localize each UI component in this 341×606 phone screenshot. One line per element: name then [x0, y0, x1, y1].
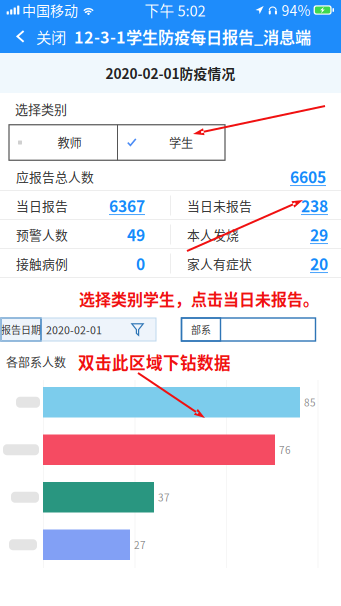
staticText: 27: [134, 537, 146, 552]
button[interactable]: 报告日期: [1, 318, 156, 341]
button[interactable]: 49: [127, 221, 145, 248]
staticText: 学生: [169, 134, 193, 151]
button[interactable]: 37: [0, 482, 341, 512]
staticText: 关闭: [36, 25, 66, 48]
staticText: 6367: [109, 194, 145, 217]
staticText: 选择类别学生，点击当日未报告。: [79, 287, 319, 310]
staticText: 20: [310, 252, 328, 275]
staticText: 94%: [282, 0, 311, 20]
staticText: 当日未报告: [187, 196, 252, 215]
staticText: 49: [127, 223, 145, 246]
staticText: 报告日期: [1, 322, 41, 337]
button[interactable]: 部系: [181, 318, 315, 341]
button[interactable]: 76: [0, 434, 341, 465]
staticText: 37: [158, 490, 170, 504]
button[interactable]: 0: [136, 250, 145, 277]
staticText: 各部系人数: [6, 353, 66, 371]
button[interactable]: 学生: [118, 125, 225, 160]
staticText: 85: [304, 395, 316, 409]
staticText: 中国移动: [22, 0, 78, 20]
staticText: 选择类别: [15, 99, 67, 118]
staticText: 当日报告: [16, 196, 68, 215]
staticText: 本人发烧: [187, 225, 239, 244]
staticText: 家人有症状: [187, 254, 252, 273]
staticText: 0: [136, 252, 145, 275]
staticText: 76: [279, 442, 291, 457]
button[interactable]: 教师: [9, 125, 117, 160]
button[interactable]: 返回: [9, 20, 32, 53]
button[interactable]: 85: [0, 387, 341, 417]
staticText: 预警人数: [16, 225, 68, 244]
staticText: 29: [310, 223, 328, 246]
button[interactable]: 6605: [290, 163, 326, 190]
staticText: 双击此区域下钻数据: [78, 350, 231, 374]
staticText: 238: [301, 194, 328, 217]
staticText: 接触病例: [16, 254, 68, 273]
staticText: 12-3-1学生防疫每日报告_消息端: [74, 25, 311, 48]
staticText: 2020-02-01: [46, 322, 102, 337]
staticText: 下午 5:02: [145, 0, 206, 21]
staticText: 2020-02-01防疫情况: [105, 63, 235, 83]
button[interactable]: 20: [310, 250, 328, 277]
button[interactable]: 关闭: [32, 17, 70, 56]
staticText: 教师: [57, 134, 81, 151]
button[interactable]: 238: [301, 192, 328, 219]
button[interactable]: 6367: [109, 192, 145, 219]
button[interactable]: 29: [310, 221, 328, 248]
staticText: 6605: [290, 165, 326, 188]
button[interactable]: 27: [0, 529, 341, 560]
staticText: 应报告总人数: [16, 167, 94, 186]
staticText: 部系: [191, 322, 211, 337]
